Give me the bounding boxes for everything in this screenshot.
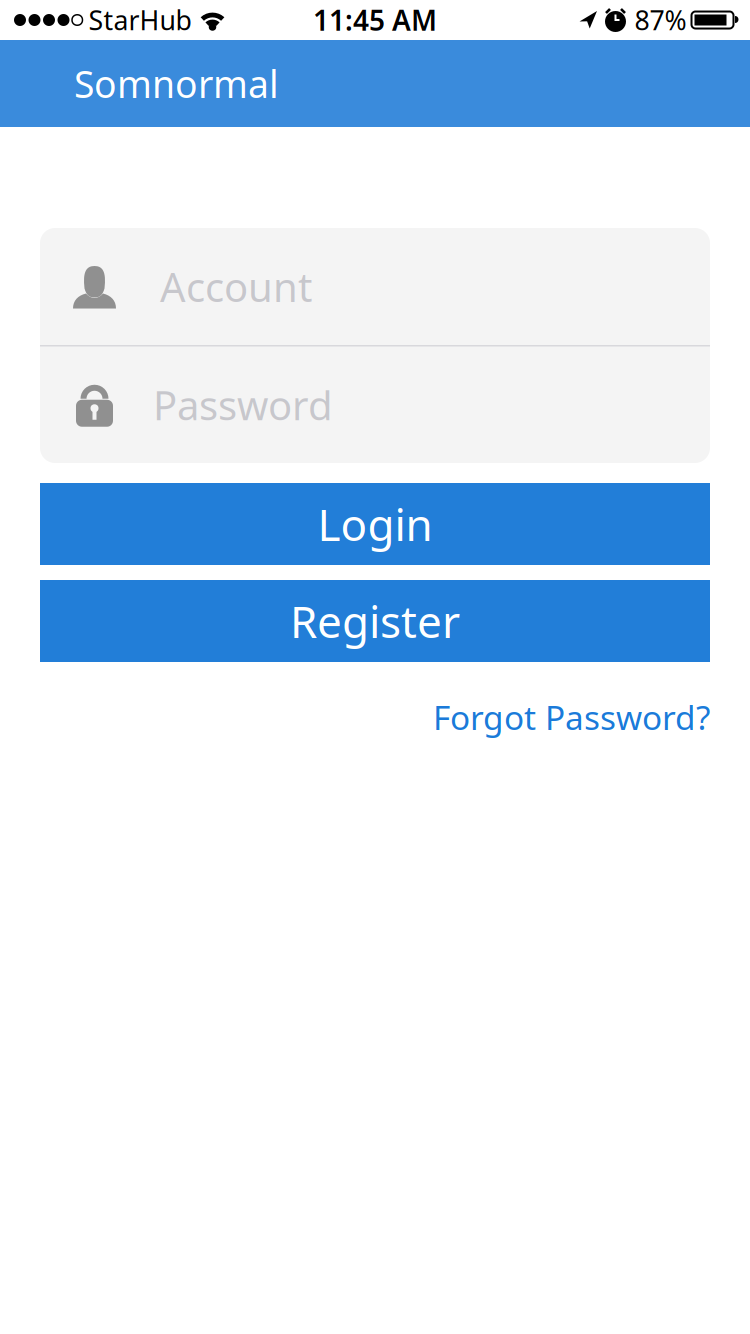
staticText: Somnormal [74, 59, 279, 108]
button[interactable]: Register [40, 580, 710, 662]
staticText: Forgot Password? [433, 695, 710, 739]
button[interactable]: Account [40, 228, 710, 345]
staticText: 11:45 AM [313, 1, 437, 39]
button[interactable]: Forgot Password? [433, 695, 710, 739]
staticText: Register [290, 592, 460, 650]
button[interactable]: Login [40, 483, 710, 565]
staticText: Password [153, 378, 333, 431]
staticText: Account [160, 260, 312, 313]
staticText: StarHub [88, 2, 191, 38]
staticText: 87% [634, 2, 686, 38]
staticText: Login [317, 495, 432, 553]
button[interactable]: Password [40, 346, 710, 463]
